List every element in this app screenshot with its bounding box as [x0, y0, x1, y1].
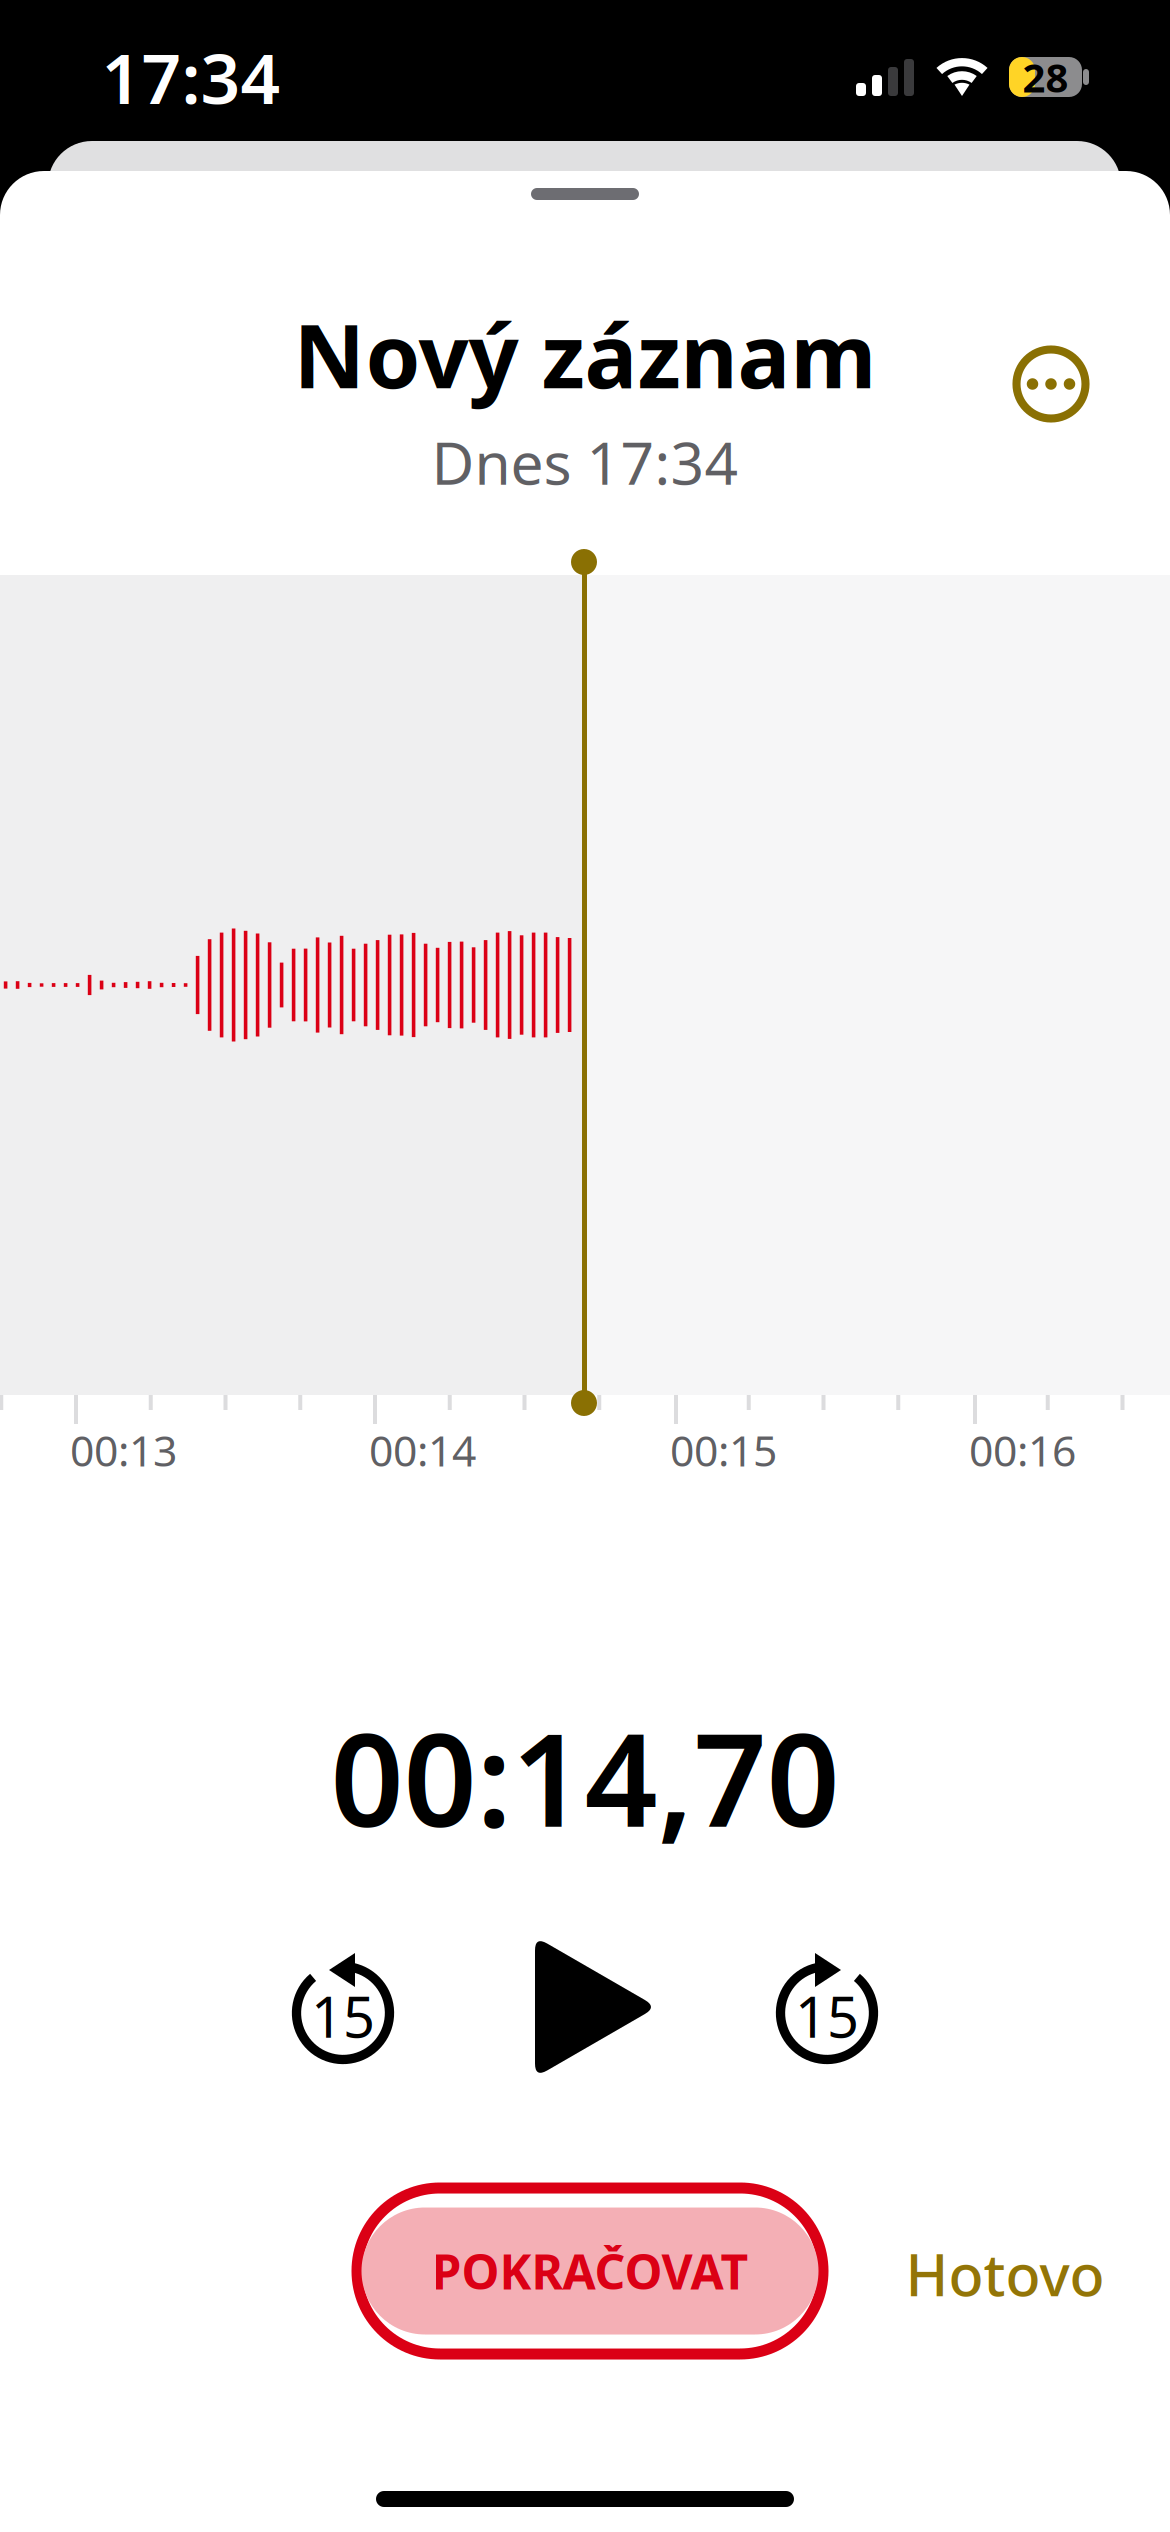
staticText: POKRAČOVAT	[431, 2239, 748, 2303]
staticText: 00:16	[969, 1422, 1076, 1478]
button[interactable]: Play	[511, 1922, 681, 2092]
staticText: 28	[1022, 50, 1068, 103]
staticText: 00:14,70	[330, 1692, 839, 1862]
button[interactable]: More options	[995, 328, 1107, 440]
staticText: 00:14	[369, 1422, 476, 1478]
staticText: 00:13	[70, 1422, 177, 1478]
staticText: Nový záznam	[293, 296, 876, 412]
button[interactable]: Skip forward 15 seconds	[757, 1943, 897, 2083]
staticText: Dnes 17:34	[431, 423, 738, 501]
staticText: 15	[795, 1979, 859, 2053]
staticText: Hotovo	[905, 2236, 1104, 2312]
button[interactable]: POKRAČOVAT	[340, 2171, 840, 2371]
staticText: 15	[311, 1979, 375, 2053]
button[interactable]: Hotovo	[880, 2224, 1130, 2324]
button[interactable]: Skip back 15 seconds	[273, 1943, 413, 2083]
staticText: 00:15	[670, 1422, 777, 1478]
staticText: 17:34	[101, 31, 280, 123]
